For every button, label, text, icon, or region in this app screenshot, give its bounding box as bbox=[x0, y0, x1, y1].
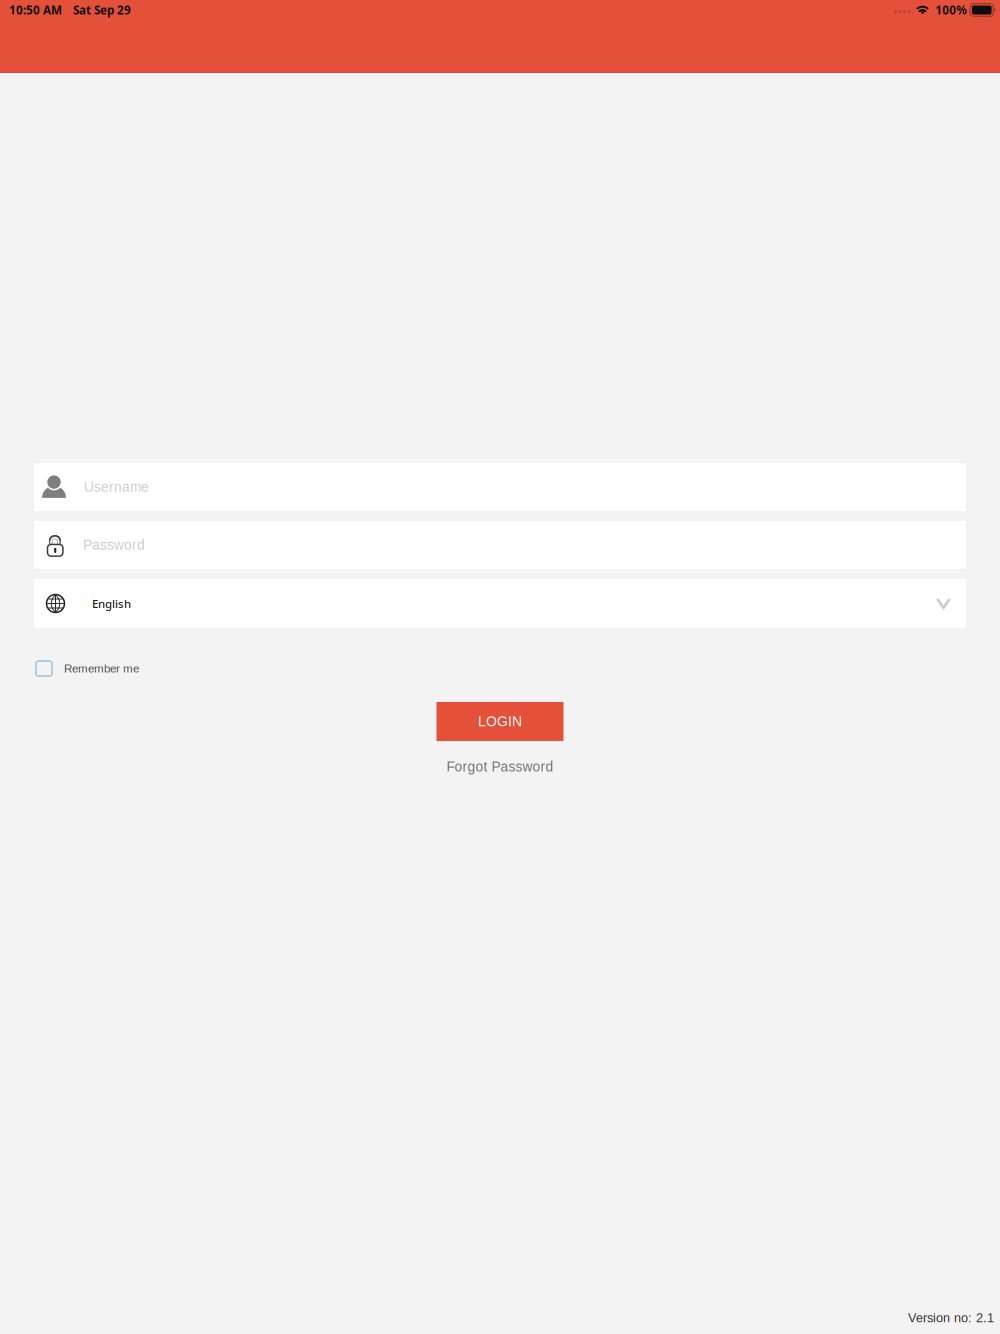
staticText: Password bbox=[83, 537, 145, 553]
button[interactable]: English bbox=[34, 579, 966, 628]
staticText: Version no: 2.1 bbox=[908, 1311, 994, 1325]
button[interactable]: Remember me bbox=[36, 661, 139, 676]
button[interactable]: Forgot Password bbox=[446, 759, 553, 774]
button[interactable]: Password bbox=[34, 521, 966, 569]
button[interactable]: Username bbox=[34, 463, 966, 511]
staticText: English bbox=[92, 596, 131, 611]
staticText: LOGIN bbox=[478, 714, 522, 729]
staticText: Sat Sep 29 bbox=[73, 2, 131, 18]
staticText: 10:50 AM bbox=[9, 2, 62, 18]
staticText: 100% bbox=[935, 2, 967, 18]
staticText: Username bbox=[84, 479, 149, 495]
staticText: Forgot Password bbox=[446, 759, 553, 774]
button[interactable]: LOGIN bbox=[436, 702, 563, 741]
staticText: Remember me bbox=[64, 662, 139, 675]
